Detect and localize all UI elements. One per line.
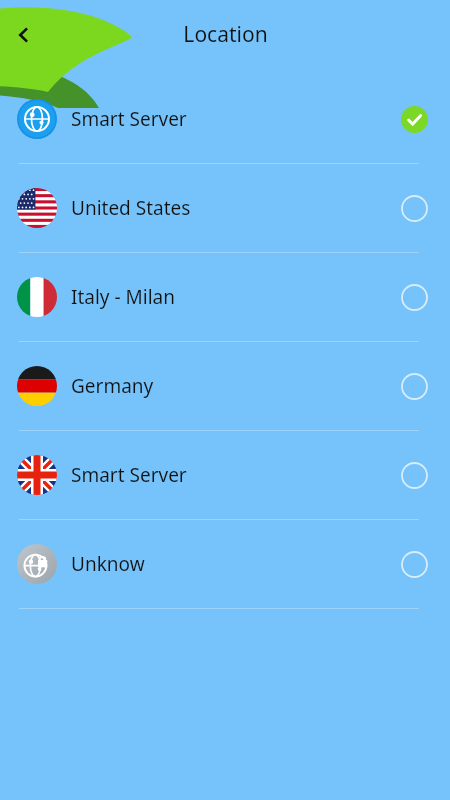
- button[interactable]: Italy - Milan: [0, 253, 450, 341]
- staticText: Italy - Milan: [71, 284, 175, 310]
- button[interactable]: United States: [0, 164, 450, 252]
- button[interactable]: Back: [2, 13, 46, 57]
- staticText: Unknow: [71, 551, 145, 577]
- staticText: Smart Server: [71, 106, 187, 132]
- button[interactable]: Germany: [0, 342, 450, 430]
- button[interactable]: Smart Server: [0, 75, 450, 163]
- staticText: United States: [71, 195, 191, 221]
- button[interactable]: Smart Server: [0, 431, 450, 519]
- button[interactable]: Unknow: [0, 520, 450, 608]
- staticText: Germany: [71, 373, 154, 399]
- staticText: Location: [183, 20, 268, 49]
- staticText: Smart Server: [71, 462, 187, 488]
